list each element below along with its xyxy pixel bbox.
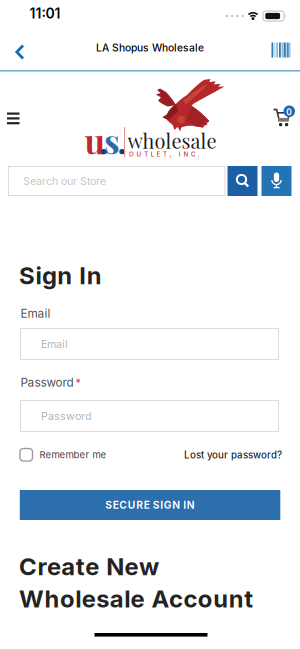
staticText: Create New Wholesale Account [19,552,253,613]
staticText: Password [20,375,73,390]
staticText: OUTLET, INC. [129,150,200,158]
staticText: Search our Store [23,174,106,187]
button[interactable]: Email [20,328,279,360]
staticText: Lost your password? [184,449,282,461]
staticText: Sign In [19,261,102,290]
staticText: s [104,117,120,163]
button[interactable] [0,0,300,649]
button[interactable] [0,0,300,649]
staticText: Email [41,337,68,350]
staticText: Remember me [39,449,106,460]
button[interactable]: 0 [0,0,300,649]
staticText: 11:01 [29,5,60,22]
button[interactable] [0,0,300,649]
staticText: Email [20,306,50,321]
staticText: u [84,117,105,163]
button[interactable]: SECURE SIGN IN [0,0,260,30]
staticText: . [117,117,126,163]
button[interactable]: Lost your password? [0,0,282,12]
button[interactable]: Remember me [0,0,86,12]
staticText: wholesale [127,127,216,154]
staticText: 0 [286,107,292,117]
button[interactable]: Search our Store [8,166,225,196]
staticText: LA Shopus Wholesale [96,41,204,54]
staticText: . [99,117,108,163]
staticText: * [75,376,80,389]
staticText: SECURE SIGN IN [105,499,195,511]
staticText: Password [41,409,92,422]
button[interactable]: Password [20,400,279,432]
